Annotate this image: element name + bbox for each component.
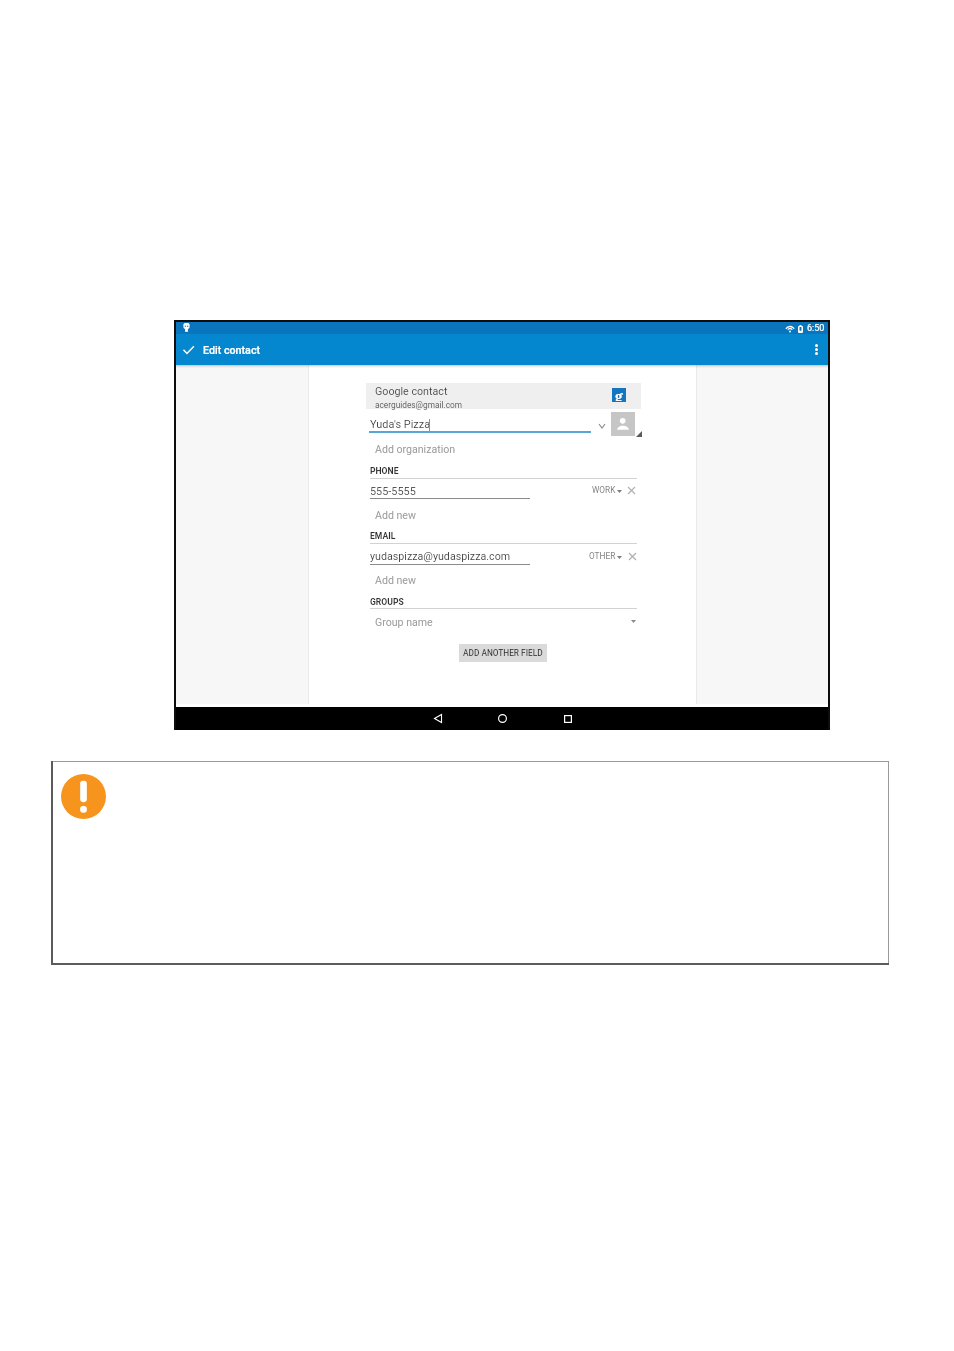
button[interactable]: ADD ANOTHER FIELD [459,644,547,662]
staticText: GROUPS [370,597,404,607]
staticText: Yuda's Pizza [370,418,431,431]
button[interactable]: Add new [369,571,549,589]
staticText: Add organization [375,443,456,455]
staticText: ADD ANOTHER FIELD [463,648,543,658]
button[interactable]: Back [405,707,470,730]
staticText: Edit contact [203,344,261,357]
staticText: 555-5555 [370,485,416,498]
button[interactable]: Remove field [625,484,638,497]
staticText: EMAIL [370,531,396,541]
button[interactable]: Contact photo [611,412,635,436]
staticText: Group name [375,616,433,628]
button[interactable]: Add new [369,506,549,524]
staticText: Add new [375,509,416,521]
button[interactable]: OTHER [586,547,625,565]
staticText: g [615,387,623,401]
button[interactable]: Home [470,707,535,730]
button[interactable]: More options [804,334,828,365]
staticText: Add new [375,574,416,586]
staticText: yudaspizza@yudaspizza.com [370,550,511,563]
staticText: OTHER [589,551,616,561]
button[interactable]: Recent apps [535,707,600,730]
button[interactable]: Save contact [175,334,202,365]
button[interactable]: Add organization [369,440,549,458]
button[interactable]: Remove field [626,550,639,563]
button[interactable]: WORK [589,481,625,499]
staticText: PHONE [370,466,399,476]
staticText: Google contact [375,385,448,398]
staticText: WORK [592,485,616,495]
button[interactable]: Group name [369,613,549,631]
button[interactable]: Google contact [366,383,641,409]
staticText: 6:50 [807,323,825,334]
staticText: acerguides@gmail.com [375,400,463,410]
